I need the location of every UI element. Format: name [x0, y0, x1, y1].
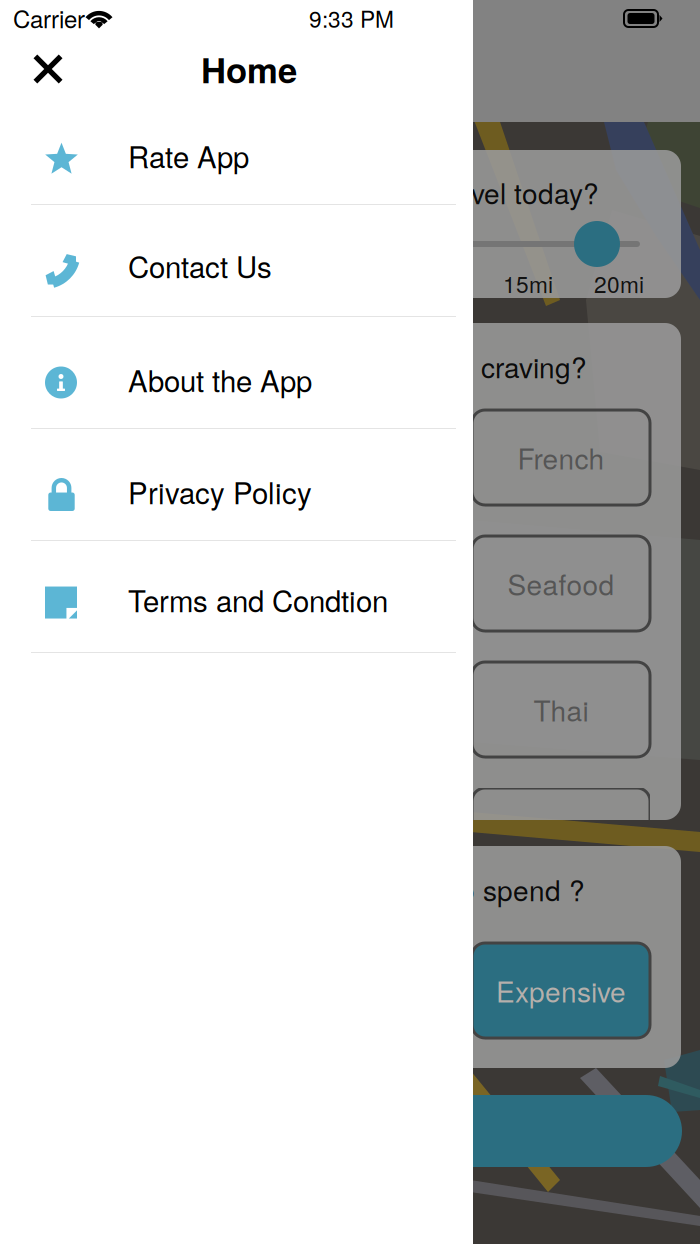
staticText: About the App: [128, 358, 312, 400]
staticText: Thai: [533, 689, 588, 730]
button[interactable]: Rate App: [0, 93, 500, 205]
button[interactable]: About the App: [0, 317, 500, 429]
staticText: Contact Us: [128, 244, 272, 286]
staticText: 9:33 PM: [309, 2, 394, 34]
staticText: Indian: [522, 815, 600, 856]
staticText: French: [517, 437, 604, 478]
staticText: Carrier: [13, 1, 85, 35]
staticText: How much do you want to spend ?: [150, 869, 585, 909]
button[interactable]: Contact Us: [0, 205, 500, 317]
button[interactable]: Expensive: [472, 943, 650, 1038]
staticText: What are you craving?: [305, 346, 587, 386]
button[interactable]: Thai: [472, 662, 650, 757]
staticText: Expensive: [496, 970, 626, 1011]
button[interactable]: Close: [21, 49, 75, 89]
staticText: Seafood: [507, 563, 614, 604]
staticText: Terms and Condtion: [128, 578, 388, 620]
button[interactable]: Terms and Condtion: [0, 541, 500, 653]
staticText: 15mi: [503, 267, 553, 299]
staticText: Home: [201, 44, 297, 94]
button[interactable]: Privacy Policy: [0, 429, 500, 541]
staticText: How far will you travel today?: [236, 172, 599, 212]
button[interactable]: Indian: [472, 788, 650, 883]
staticText: Rate App: [128, 134, 249, 176]
staticText: Privacy Policy: [128, 470, 312, 512]
staticText: 20mi: [594, 267, 644, 299]
button[interactable]: French: [472, 410, 650, 505]
button[interactable]: Find restaurants: [18, 1095, 682, 1167]
button[interactable]: Seafood: [472, 536, 650, 631]
